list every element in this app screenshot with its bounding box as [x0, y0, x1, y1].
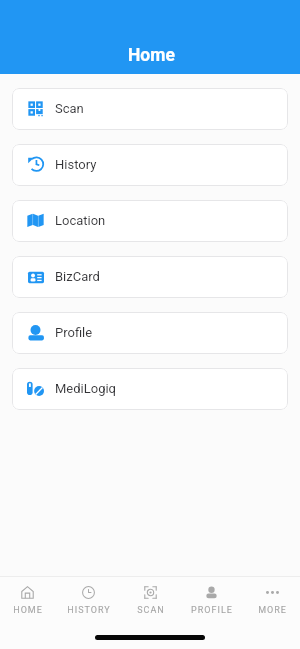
button[interactable]: Scan	[128, 577, 173, 616]
button[interactable]: Home	[5, 577, 50, 616]
staticText: Home	[128, 45, 175, 66]
staticText: BizCard	[55, 269, 100, 284]
staticText: SCAN	[137, 605, 165, 616]
button[interactable]: BizCard	[12, 256, 288, 298]
other: Home	[21, 586, 34, 599]
button[interactable]: Scan	[12, 88, 288, 130]
staticText: History	[55, 157, 97, 172]
button[interactable]: Profile	[189, 577, 234, 616]
staticText: Profile	[55, 325, 93, 340]
other: History	[82, 586, 95, 599]
button[interactable]: History	[66, 577, 111, 616]
staticText: HISTORY	[67, 605, 111, 616]
staticText: PROFILE	[191, 605, 233, 616]
other: Scan	[144, 586, 157, 599]
other: Profile	[205, 586, 218, 599]
staticText: Location	[55, 213, 106, 228]
staticText: Scan	[55, 101, 84, 116]
staticText: MediLogiq	[55, 381, 117, 396]
button[interactable]: MediLogiq	[12, 368, 288, 410]
other: More	[266, 586, 279, 599]
staticText: HOME	[13, 605, 43, 616]
button[interactable]: Profile	[12, 312, 288, 354]
button[interactable]: Location	[12, 200, 288, 242]
button[interactable]: More	[250, 577, 295, 616]
button[interactable]: History	[12, 144, 288, 186]
staticText: MORE	[258, 605, 287, 616]
